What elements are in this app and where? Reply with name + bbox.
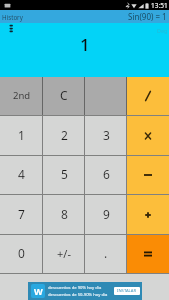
staticText: 7 [18, 206, 25, 222]
staticText: 5 [61, 166, 68, 182]
button[interactable] [127, 235, 169, 273]
button[interactable]: C [43, 77, 85, 115]
button[interactable]: 6 [85, 156, 127, 194]
button[interactable]: 2 [43, 116, 85, 155]
staticText: INSTALAR [117, 288, 137, 294]
staticText: 6 [103, 166, 110, 182]
staticText: 4 [18, 166, 25, 182]
staticText: 9 [103, 206, 110, 222]
button[interactable]: More options [3, 23, 19, 39]
button[interactable]: 9 [85, 195, 127, 234]
staticText: 1 [18, 127, 25, 143]
button[interactable]: 4 [0, 156, 43, 194]
button[interactable]: . [85, 235, 127, 273]
button[interactable]: W [28, 282, 142, 300]
button[interactable] [85, 77, 127, 115]
button[interactable]: 3 [85, 116, 127, 155]
staticText: 1 [80, 33, 90, 56]
button[interactable]: 1 [0, 116, 43, 155]
button[interactable] [127, 156, 169, 194]
button[interactable] [127, 195, 169, 234]
staticText: History [2, 13, 23, 21]
button[interactable]: 5 [43, 156, 85, 194]
button[interactable]: INSTALAR [114, 287, 140, 295]
staticText: 2 [61, 127, 68, 143]
staticText: Deg [157, 27, 168, 34]
staticText: 8 [61, 206, 68, 222]
staticText: W [34, 285, 43, 297]
staticText: descuentos de 90% hoy dia [48, 285, 102, 291]
staticText: 13:51 [151, 1, 168, 10]
staticText: C [60, 87, 68, 103]
button[interactable] [127, 116, 169, 155]
staticText: 3 [103, 127, 110, 143]
staticText: Sin(90) = 1 [128, 11, 167, 22]
button[interactable]: 2nd [0, 77, 43, 115]
staticText: descuentos de 50-90% hoy dia [48, 292, 108, 298]
staticText: 2nd [13, 89, 31, 102]
button[interactable]: 7 [0, 195, 43, 234]
staticText: 0 [18, 245, 25, 261]
button[interactable]: History [0, 10, 169, 23]
button[interactable] [127, 77, 169, 115]
button[interactable]: +/- [43, 235, 85, 273]
staticText: +/- [57, 246, 71, 261]
button[interactable]: 8 [43, 195, 85, 234]
staticText: . [104, 245, 108, 261]
button[interactable]: 0 [0, 235, 43, 273]
